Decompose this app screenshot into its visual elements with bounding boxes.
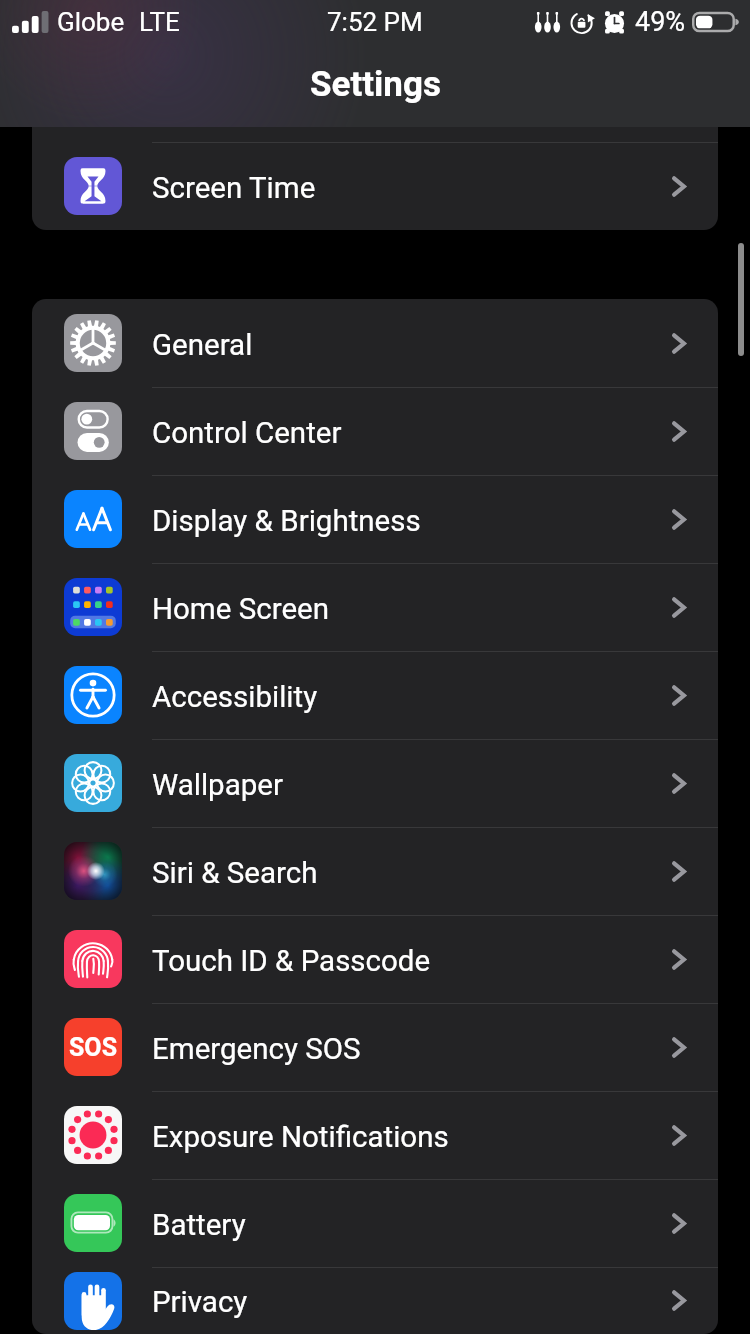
button[interactable]: Privacy <box>32 1267 718 1334</box>
button[interactable]: General <box>32 299 718 387</box>
staticText: Siri & Search <box>152 856 318 891</box>
staticText: Home Screen <box>152 592 329 627</box>
staticText: Screen Time <box>152 171 316 206</box>
staticText: Settings <box>310 64 441 105</box>
button[interactable]: Display & Brightness <box>32 475 718 563</box>
button[interactable]: Control Center <box>32 387 718 475</box>
staticText: Accessibility <box>152 680 318 715</box>
staticText: LTE <box>139 7 180 37</box>
staticText: Wallpaper <box>152 768 283 803</box>
staticText: 49% <box>635 6 686 38</box>
staticText: Battery <box>152 1208 246 1243</box>
staticText: Globe <box>57 7 125 37</box>
button[interactable]: SOS <box>32 1003 718 1091</box>
staticText: Control Center <box>152 416 342 451</box>
button[interactable]: Screen Time <box>32 142 718 230</box>
staticText: Exposure Notifications <box>152 1120 449 1155</box>
staticText: Display & Brightness <box>152 504 421 539</box>
button[interactable]: Siri & Search <box>32 827 718 915</box>
staticText: General <box>152 328 253 363</box>
staticText: SOS <box>69 1033 117 1062</box>
button[interactable]: Touch ID & Passcode <box>32 915 718 1003</box>
button[interactable]: Battery <box>32 1179 718 1267</box>
button[interactable]: Home Screen <box>32 563 718 651</box>
staticText: Privacy <box>152 1285 248 1320</box>
staticText: Touch ID & Passcode <box>152 944 431 979</box>
button[interactable]: Accessibility <box>32 651 718 739</box>
button[interactable]: Exposure Notifications <box>32 1091 718 1179</box>
button[interactable]: Wallpaper <box>32 739 718 827</box>
staticText: 7:52 PM <box>327 7 423 37</box>
staticText: Emergency SOS <box>152 1032 361 1067</box>
